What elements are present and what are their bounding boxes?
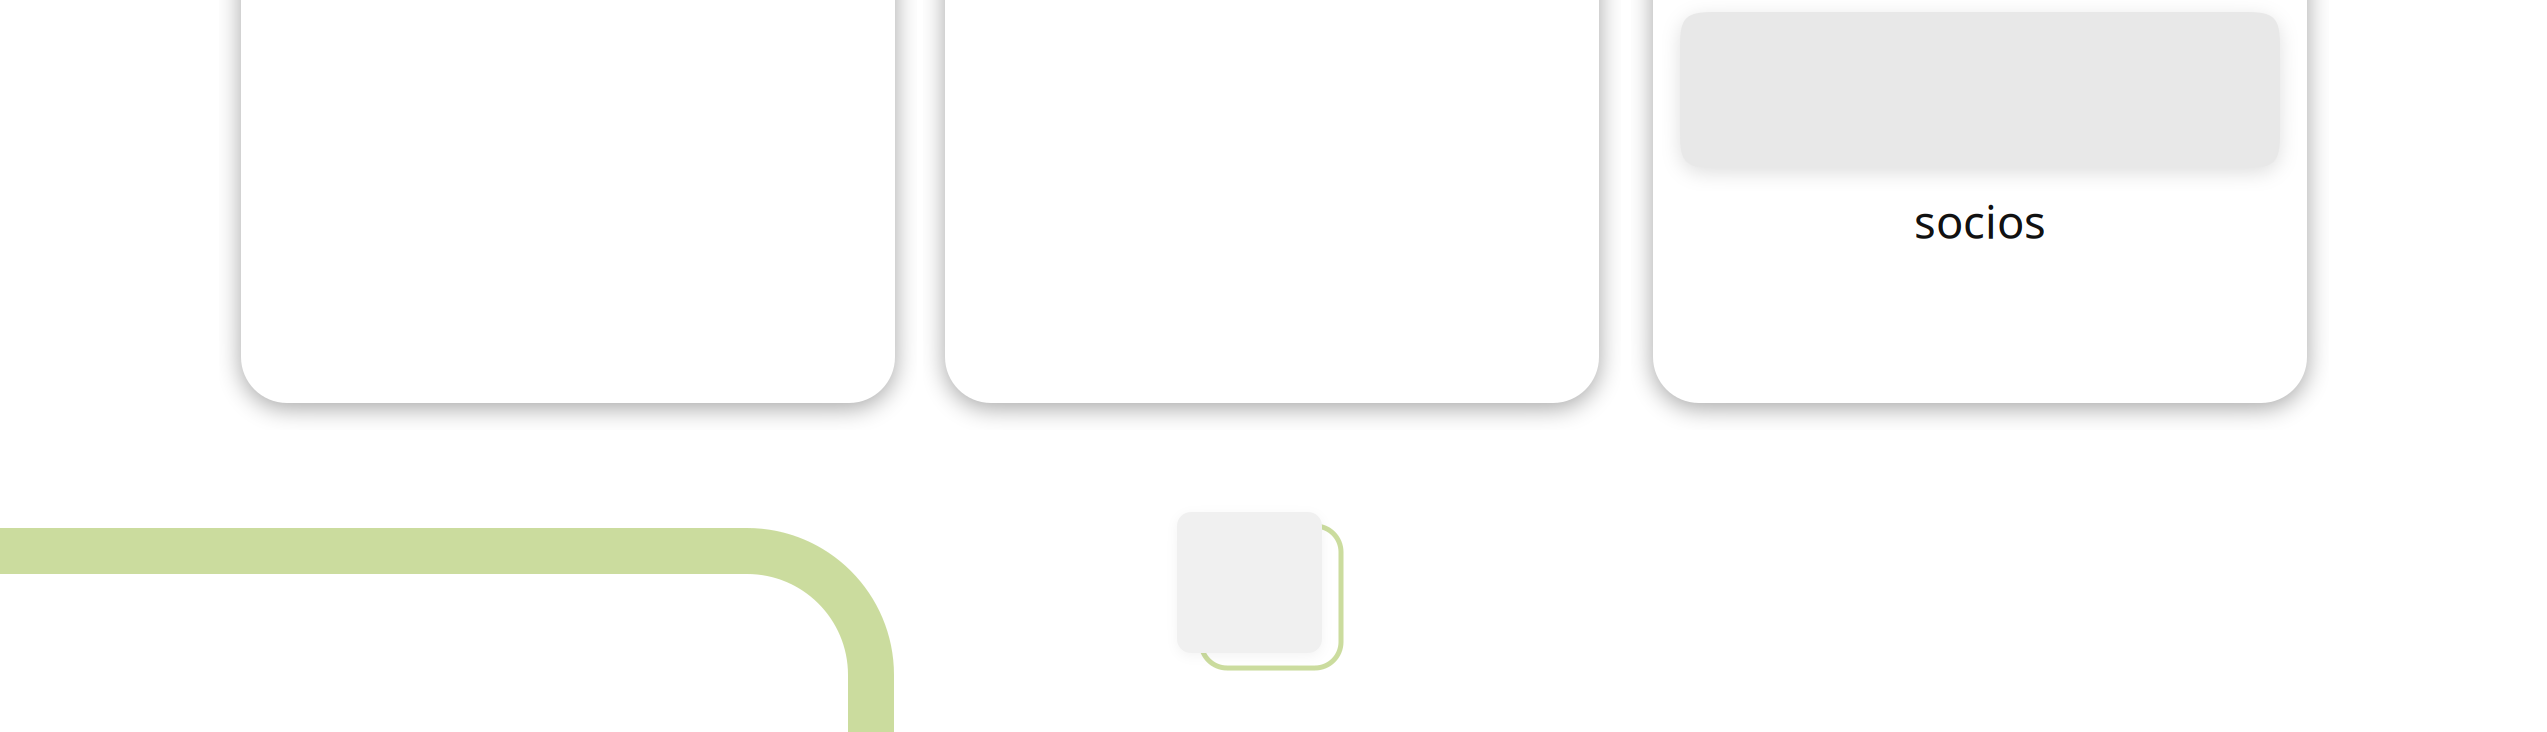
staticText: socios — [1914, 191, 2046, 251]
button[interactable]: socios — [1653, 0, 2307, 403]
